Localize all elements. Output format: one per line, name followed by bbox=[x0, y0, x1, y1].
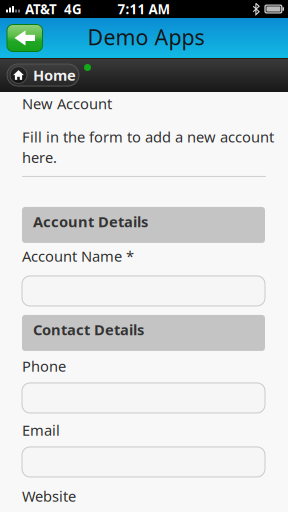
staticText: 7:11 AM bbox=[117, 0, 170, 18]
staticText: Home bbox=[33, 65, 76, 85]
button[interactable]: Back bbox=[7, 24, 42, 51]
staticText: Phone bbox=[22, 356, 66, 376]
staticText: Website bbox=[22, 486, 76, 506]
staticText: Account Details bbox=[33, 212, 148, 231]
staticText: AT&T bbox=[25, 0, 57, 18]
button[interactable]: Home bbox=[7, 64, 79, 86]
staticText: Account Name * bbox=[22, 246, 134, 266]
staticText: Demo Apps bbox=[87, 23, 204, 51]
staticText: Email bbox=[22, 420, 60, 440]
staticText: New Account bbox=[22, 94, 112, 113]
staticText: Fill in the form to add a new account he… bbox=[22, 127, 274, 167]
staticText: Contact Details bbox=[33, 320, 144, 339]
staticText: 4G bbox=[64, 0, 82, 18]
